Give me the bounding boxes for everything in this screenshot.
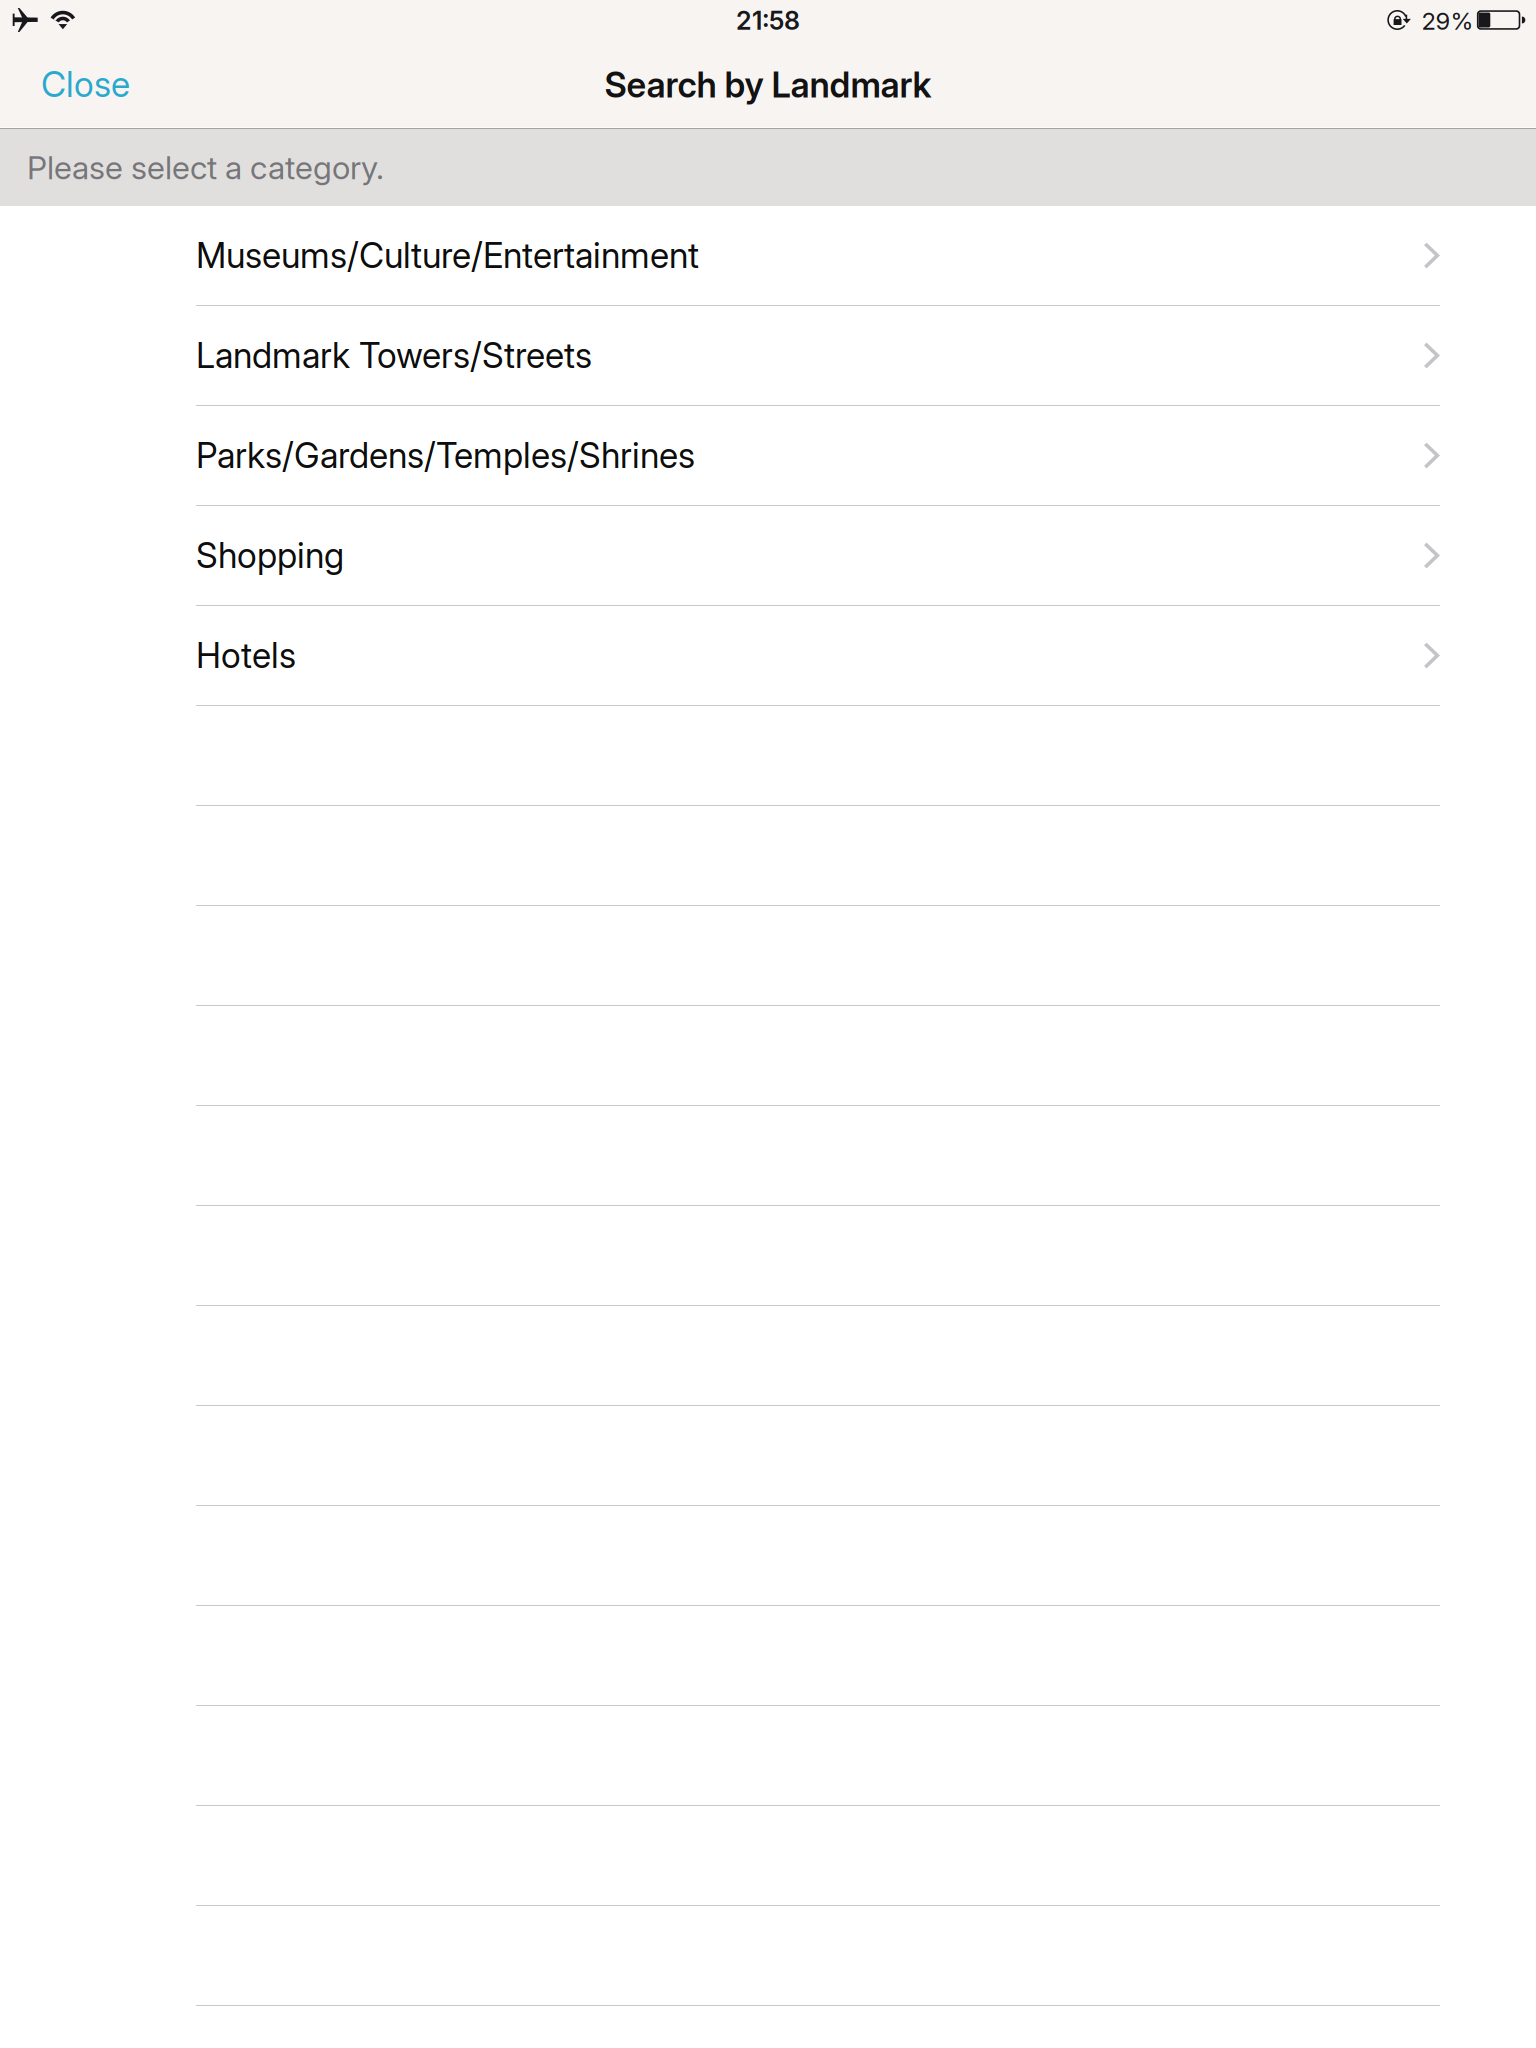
button[interactable]: Hotels [0,606,1536,706]
button[interactable]: Parks/Gardens/Temples/Shrines [0,406,1536,506]
button[interactable]: Shopping [0,506,1536,606]
staticText: Hotels [196,634,296,676]
staticText: Landmark Towers/Streets [196,334,592,376]
staticText: 29% [1421,6,1473,35]
staticText: Parks/Gardens/Temples/Shrines [196,434,695,476]
staticText: Close [41,63,130,105]
staticText: Shopping [196,534,344,576]
staticText: Search by Landmark [604,64,931,106]
staticText: Museums/Culture/Entertainment [196,234,699,276]
staticText: Please select a category. [27,148,384,187]
button[interactable]: Close [0,44,160,127]
button[interactable]: Museums/Culture/Entertainment [0,206,1536,306]
button[interactable]: Landmark Towers/Streets [0,306,1536,406]
staticText: 21:58 [736,5,800,36]
